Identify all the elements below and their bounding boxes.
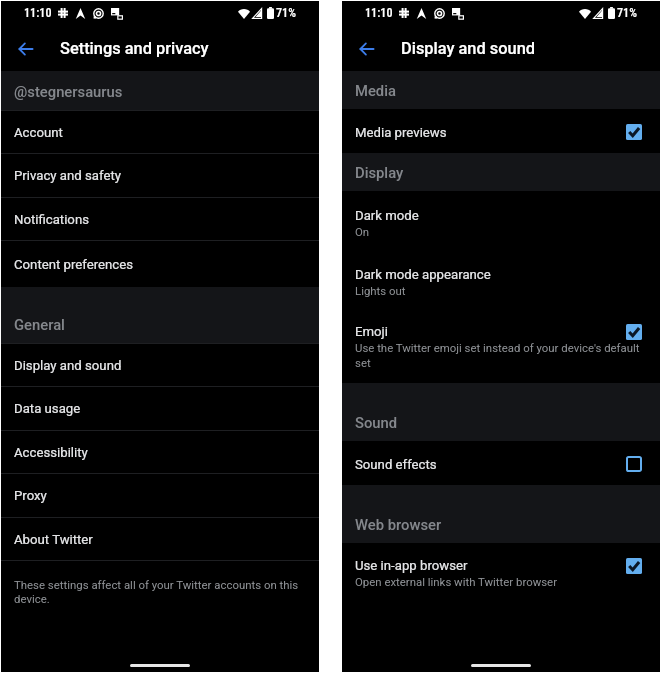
staticText: Privacy and safety [14,168,121,183]
button[interactable]: Privacy and safety [1,154,319,197]
button[interactable]: Navigate back [6,30,44,68]
staticText: Use the Twitter emoji set instead of you… [355,341,647,369]
staticText: @stegnersaurus [14,83,123,100]
staticText: 11:10 [365,6,393,20]
staticText: Use in-app browser [355,558,468,573]
button[interactable]: Use in-app browser [342,543,660,597]
staticText: Accessibility [14,445,88,460]
button[interactable]: About Twitter [1,518,319,560]
staticText: 71% [276,6,296,20]
staticText: Settings and privacy [60,39,209,58]
staticText: Dark mode appearance [355,267,491,282]
button[interactable]: Account [1,111,319,153]
staticText: Proxy [14,488,47,503]
button[interactable]: Proxy [1,474,319,517]
staticText: Media previews [355,125,447,140]
staticText: 71% [617,6,637,20]
button[interactable]: Display and sound [1,344,319,386]
staticText: 11:10 [24,6,52,20]
staticText: Display [355,164,404,181]
button[interactable]: Sound effects [342,441,660,485]
staticText: These settings affect all of your Twitte… [14,578,302,606]
staticText: Content preferences [14,257,134,272]
staticText: Data usage [14,401,81,416]
staticText: About Twitter [14,532,93,547]
staticText: Notifications [14,212,89,227]
staticText: General [14,316,65,333]
staticText: Open external links with Twitter browser [355,575,557,588]
button[interactable]: Content preferences [1,241,319,287]
staticText: Lights out [355,284,406,297]
staticText: Account [14,125,63,140]
staticText: Display and sound [14,358,122,373]
staticText: Display and sound [401,39,535,58]
staticText: Sound effects [355,457,437,472]
staticText: Web browser [355,516,442,533]
staticText: Dark mode [355,208,419,223]
staticText: Sound [355,414,398,431]
button[interactable]: Notifications [1,198,319,240]
button[interactable]: Dark mode [342,191,660,250]
button[interactable]: Accessibility [1,431,319,473]
staticText: Emoji [355,324,388,339]
staticText: On [355,225,370,238]
staticText: Media [355,82,396,99]
button[interactable]: Emoji [342,306,660,383]
button[interactable]: Dark mode appearance [342,250,660,306]
button[interactable]: Navigate back [347,30,385,68]
button[interactable]: Data usage [1,387,319,430]
button[interactable]: Media previews [342,109,660,153]
